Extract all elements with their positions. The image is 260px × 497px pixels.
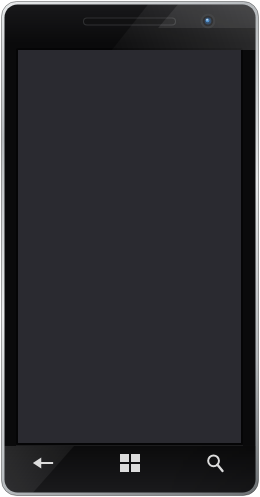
button[interactable]: Start — [102, 443, 158, 483]
button[interactable]: Back — [15, 443, 71, 483]
button[interactable]: Search — [187, 443, 243, 483]
